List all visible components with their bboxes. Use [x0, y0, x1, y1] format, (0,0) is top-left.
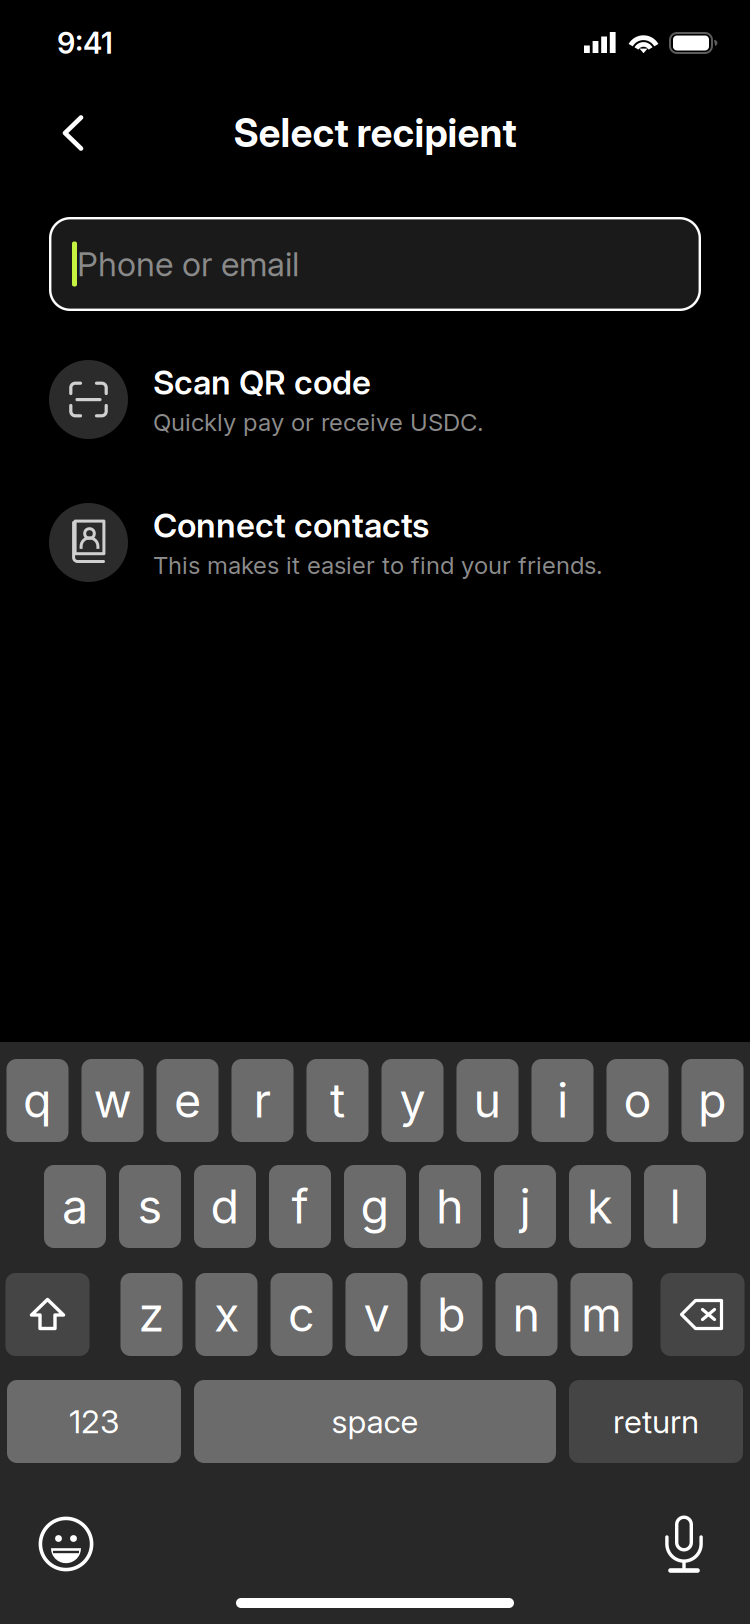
button[interactable]: c — [270, 1273, 332, 1356]
staticText: x — [214, 1286, 239, 1343]
button[interactable]: g — [344, 1165, 406, 1248]
staticText: d — [210, 1178, 239, 1235]
staticText: g — [360, 1178, 389, 1235]
staticText: s — [137, 1178, 162, 1235]
staticText: u — [473, 1072, 501, 1129]
button[interactable]: h — [419, 1165, 481, 1248]
button[interactable]: l — [644, 1165, 706, 1248]
staticText: 123 — [69, 1402, 119, 1441]
button[interactable]: z — [120, 1273, 182, 1356]
button[interactable]: d — [194, 1165, 256, 1248]
staticText: v — [363, 1286, 389, 1343]
button[interactable]: f — [269, 1165, 331, 1248]
staticText: Quickly pay or receive USDC. — [153, 408, 484, 437]
button[interactable]: Scan QR code — [0, 360, 750, 439]
staticText: n — [512, 1286, 540, 1343]
staticText: y — [399, 1072, 425, 1129]
staticText: q — [23, 1072, 52, 1129]
button[interactable]: s — [119, 1165, 181, 1248]
button[interactable]: a — [44, 1165, 106, 1248]
staticText: return — [613, 1402, 699, 1441]
staticText: o — [623, 1072, 651, 1129]
button[interactable]: m — [570, 1273, 632, 1356]
button[interactable]: Back — [44, 104, 102, 162]
staticText: j — [519, 1178, 530, 1235]
button[interactable]: y — [381, 1059, 443, 1142]
staticText: Scan QR code — [153, 362, 371, 403]
button[interactable]: w — [81, 1059, 143, 1142]
staticText: r — [253, 1072, 271, 1129]
button[interactable]: return — [569, 1380, 743, 1463]
button[interactable]: x — [195, 1273, 257, 1356]
staticText: p — [698, 1072, 727, 1129]
button[interactable]: Phone or email — [0, 217, 750, 311]
staticText: e — [174, 1072, 201, 1129]
staticText: t — [330, 1072, 345, 1129]
staticText: i — [557, 1072, 568, 1129]
staticText: z — [138, 1286, 164, 1343]
button[interactable]: Shift — [5, 1273, 89, 1356]
staticText: a — [62, 1178, 88, 1235]
staticText: space — [331, 1402, 418, 1441]
button[interactable]: k — [569, 1165, 631, 1248]
staticText: Connect contacts — [153, 505, 429, 546]
button[interactable]: Delete — [660, 1273, 744, 1356]
staticText: l — [669, 1178, 680, 1235]
button[interactable]: j — [494, 1165, 556, 1248]
staticText: m — [581, 1286, 622, 1343]
button[interactable]: space — [194, 1380, 556, 1463]
button[interactable]: o — [606, 1059, 668, 1142]
staticText: 9:41 — [57, 25, 113, 61]
staticText: Phone or email — [77, 244, 299, 284]
button[interactable]: 123 — [7, 1380, 181, 1463]
button[interactable]: u — [456, 1059, 518, 1142]
staticText: c — [288, 1286, 315, 1343]
button[interactable]: Emoji — [31, 1509, 101, 1579]
staticText: w — [93, 1072, 131, 1129]
button[interactable]: i — [531, 1059, 593, 1142]
button[interactable]: q — [6, 1059, 68, 1142]
staticText: Select recipient — [233, 110, 516, 156]
button[interactable]: p — [681, 1059, 743, 1142]
button[interactable]: t — [306, 1059, 368, 1142]
staticText: This makes it easier to find your friend… — [153, 551, 603, 580]
button[interactable]: Dictate — [649, 1509, 719, 1579]
button[interactable]: n — [495, 1273, 557, 1356]
staticText: b — [437, 1286, 466, 1343]
button[interactable]: v — [345, 1273, 407, 1356]
staticText: f — [291, 1178, 308, 1235]
button[interactable]: b — [420, 1273, 482, 1356]
staticText: h — [436, 1178, 464, 1235]
button[interactable]: r — [231, 1059, 293, 1142]
button[interactable]: Connect contacts — [0, 503, 750, 582]
staticText: k — [587, 1178, 613, 1235]
button[interactable]: e — [156, 1059, 218, 1142]
